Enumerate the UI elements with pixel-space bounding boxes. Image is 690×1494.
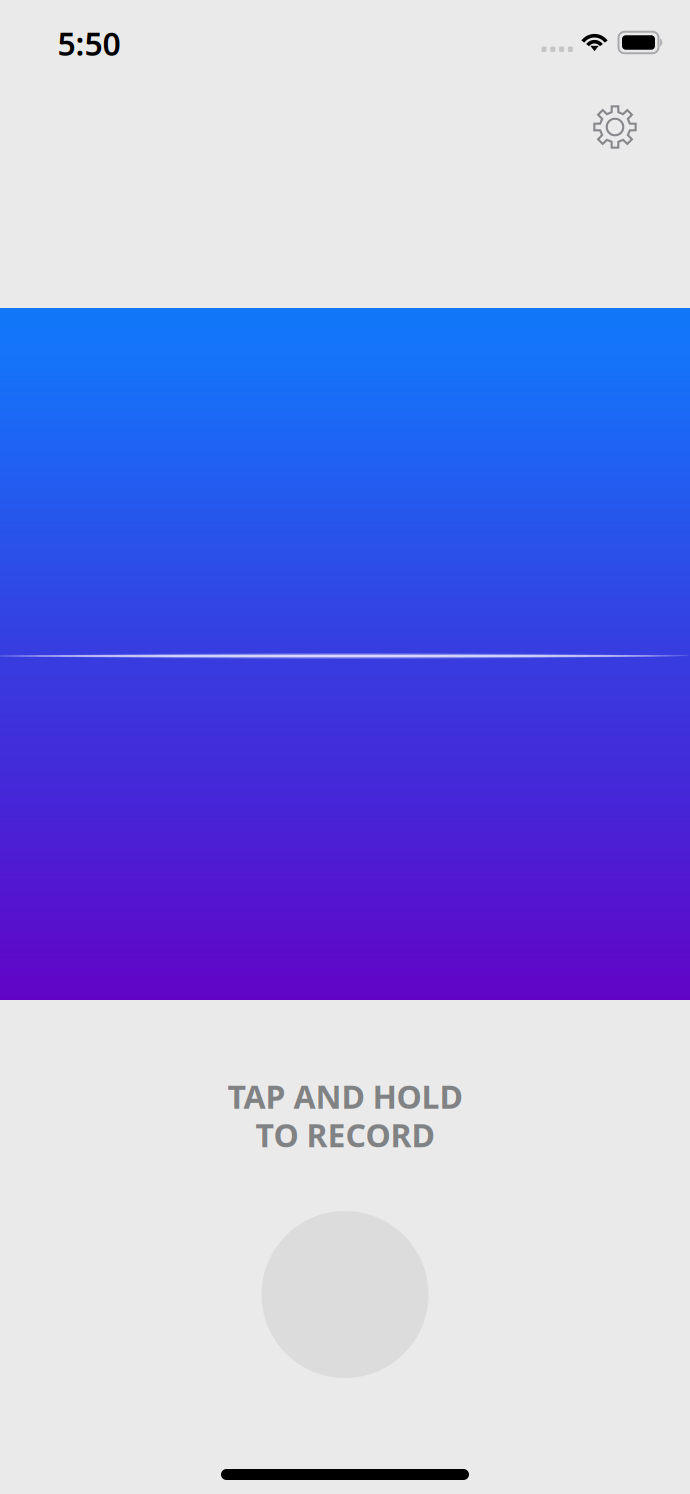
staticText: TAP AND HOLD bbox=[227, 1075, 462, 1117]
staticText: TO RECORD bbox=[255, 1113, 434, 1156]
button[interactable]: Settings bbox=[584, 96, 646, 158]
button[interactable]: Tap and hold to record bbox=[247, 1197, 442, 1392]
staticText: 5:50 bbox=[57, 22, 120, 64]
